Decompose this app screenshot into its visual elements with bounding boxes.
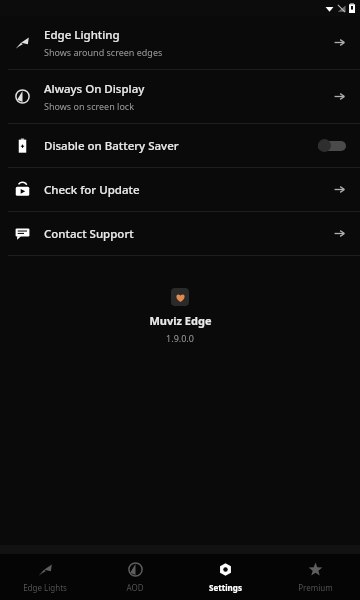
staticText: Disable on Battery Saver: [44, 138, 179, 154]
staticText: Check for Update: [44, 182, 140, 198]
button[interactable]: Edge Lights: [0, 554, 90, 600]
button[interactable]: Disable on Battery Saver toggle: [318, 139, 346, 152]
button[interactable]: AOD: [90, 554, 180, 600]
button[interactable]: Edge Lighting: [0, 16, 360, 69]
button[interactable]: Premium: [270, 554, 360, 600]
staticText: Shows on screen lock: [44, 100, 134, 112]
staticText: 1.9.0.0: [166, 332, 194, 344]
staticText: Edge Lighting: [44, 27, 120, 43]
staticText: Settings: [209, 582, 242, 593]
staticText: Edge Lights: [23, 582, 67, 593]
staticText: AOD: [126, 582, 144, 593]
staticText: Shows around screen edges: [44, 46, 163, 58]
staticText: Premium: [298, 582, 333, 593]
staticText: Contact Support: [44, 226, 134, 242]
staticText: Muviz Edge: [149, 313, 212, 328]
button[interactable]: Contact Support: [0, 212, 360, 255]
button[interactable]: Check for Update: [0, 168, 360, 211]
staticText: Always On Display: [44, 81, 145, 97]
button[interactable]: Disable on Battery Saver: [0, 124, 360, 167]
button[interactable]: Always On Display: [0, 70, 360, 123]
button[interactable]: Settings: [180, 554, 270, 600]
